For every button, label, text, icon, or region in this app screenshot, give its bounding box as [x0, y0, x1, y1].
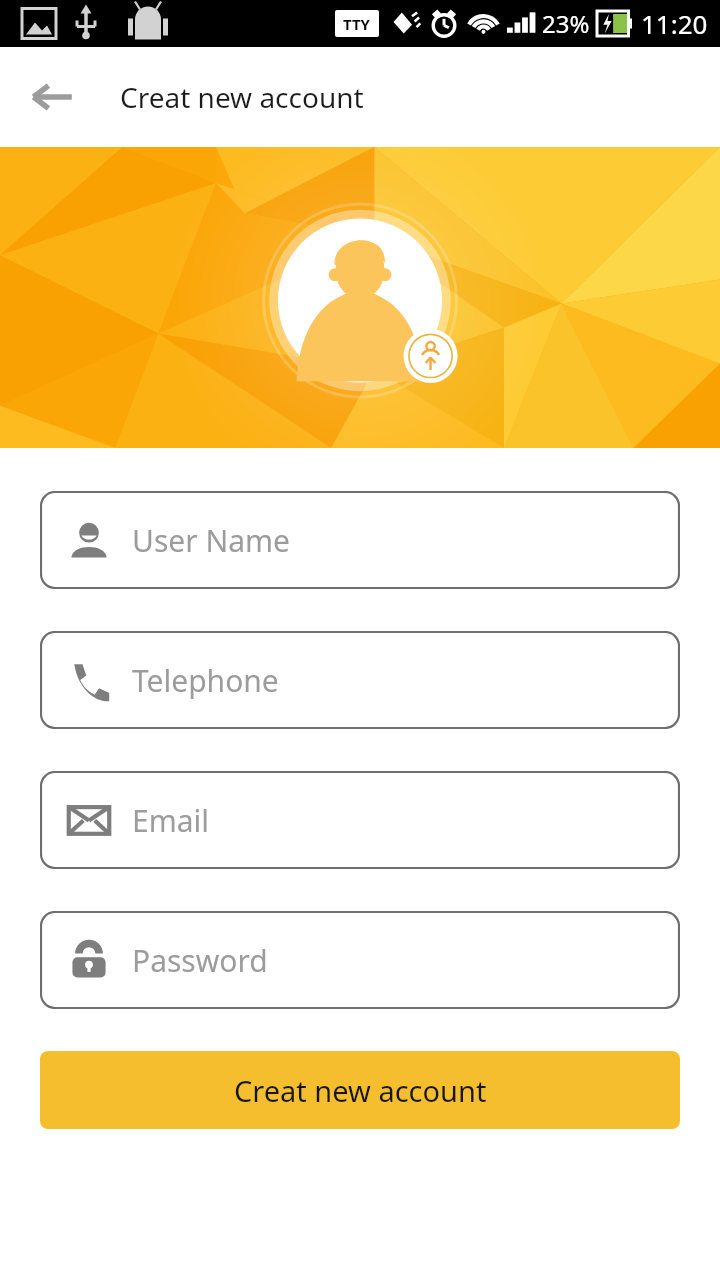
- staticText: Email: [132, 800, 210, 841]
- staticText: Creat new account: [234, 1071, 487, 1110]
- staticText: User Name: [132, 520, 291, 561]
- staticText: 23%: [542, 7, 590, 40]
- button[interactable]: Creat new account: [40, 1051, 680, 1129]
- staticText: Creat new account: [120, 78, 364, 116]
- button[interactable]: Telephone field: [40, 631, 680, 729]
- staticText: 11:20: [641, 6, 708, 41]
- button[interactable]: Back: [18, 63, 86, 131]
- staticText: TTY: [343, 14, 371, 34]
- staticText: Password: [132, 940, 268, 981]
- button[interactable]: Password field: [40, 911, 680, 1009]
- staticText: Telephone: [132, 660, 279, 701]
- button[interactable]: Email field: [40, 771, 680, 869]
- button[interactable]: User name field: [40, 491, 680, 589]
